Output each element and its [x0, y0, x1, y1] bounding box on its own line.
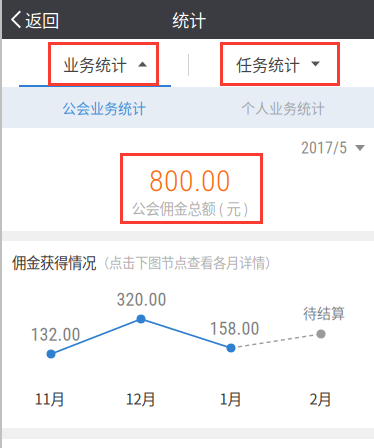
staticText: 公会佣金总额 ( 元 )	[131, 198, 248, 218]
button[interactable]: 2017/5	[2, 135, 374, 161]
button[interactable]: 返回	[2, 0, 80, 39]
staticText: 待结算	[303, 302, 345, 323]
staticText: 2月	[309, 387, 332, 409]
staticText: （点击下图节点查看各月详情）	[96, 252, 278, 272]
staticText: 佣金获得情况	[12, 252, 96, 272]
staticText: 统计	[172, 7, 206, 32]
staticText: 11月	[34, 387, 65, 409]
staticText: 320.00	[116, 289, 166, 310]
staticText: 1月	[219, 387, 242, 409]
staticText: 800.00	[149, 163, 231, 199]
staticText: 任务统计	[236, 52, 300, 76]
button[interactable]: 公会业务统计	[11, 87, 197, 128]
button[interactable]: 业务统计	[35, 42, 175, 86]
staticText: 个人业务统计	[241, 97, 325, 118]
staticText: 12月	[125, 387, 156, 409]
staticText: 公会业务统计	[62, 97, 146, 118]
staticText: 158.00	[209, 318, 259, 339]
staticText: 132.00	[30, 324, 80, 345]
staticText: 业务统计	[63, 52, 127, 76]
button[interactable]: 个人业务统计	[190, 87, 374, 128]
staticText: 返回	[25, 7, 59, 32]
button[interactable]: 任务统计	[208, 42, 348, 86]
staticText: 2017/5	[301, 139, 347, 157]
